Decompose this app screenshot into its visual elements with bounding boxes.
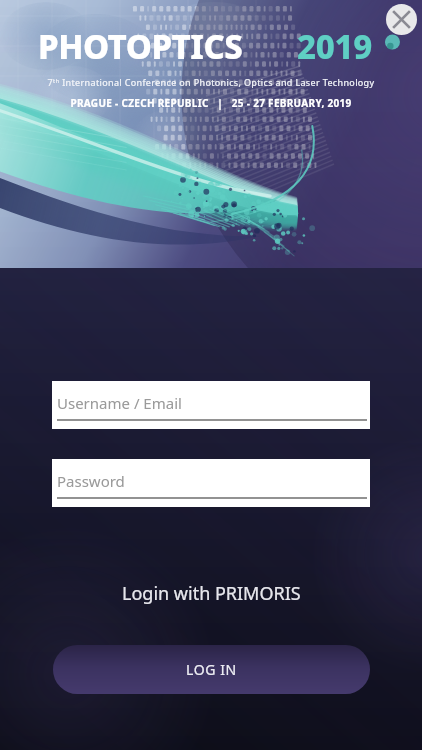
staticText: Password	[57, 471, 125, 491]
staticText: PRAGUE - CZECH REPUBLIC | 25 - 27 FEBRUA…	[0, 96, 422, 750]
button[interactable]: Close	[386, 4, 417, 35]
staticText: PHOTOPTICS	[38, 24, 243, 69]
button[interactable]: Login with PRIMORIS	[52, 578, 370, 608]
staticText: 7ᵗʰ International Conference on Photonic…	[0, 76, 422, 750]
button[interactable]: LOG IN	[53, 645, 370, 694]
staticText: Login with PRIMORIS	[122, 581, 301, 606]
staticText: LOG IN	[186, 660, 237, 679]
staticText: Username / Email	[57, 393, 182, 413]
staticText: 2019	[297, 24, 373, 69]
button[interactable]: Username / Email	[52, 381, 370, 429]
button[interactable]: Password	[52, 459, 370, 507]
